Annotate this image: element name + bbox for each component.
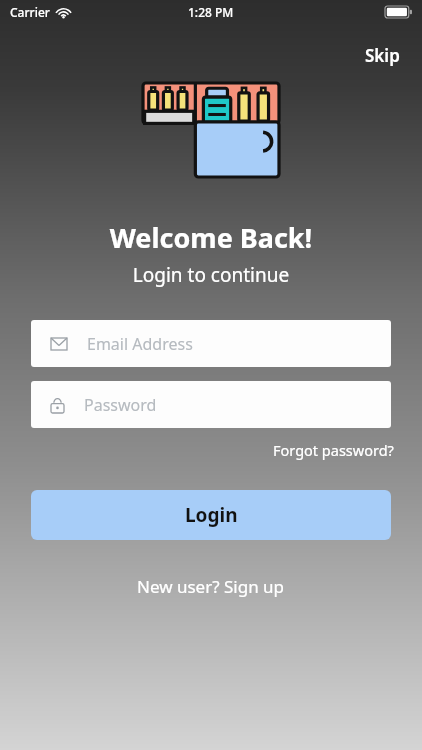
button[interactable]: Login bbox=[31, 490, 391, 540]
button[interactable]: New user? Sign up bbox=[127, 570, 295, 603]
staticText: Carrier bbox=[10, 4, 50, 20]
staticText: Welcome Back! bbox=[0, 219, 422, 256]
button[interactable]: Email bbox=[31, 320, 391, 367]
staticText: Skip bbox=[365, 44, 400, 67]
staticText: Email Address bbox=[87, 333, 193, 355]
staticText: Password bbox=[84, 394, 157, 416]
button[interactable]: Password bbox=[31, 381, 391, 428]
staticText: Forgot password? bbox=[273, 440, 394, 460]
staticText: 1:28 PM bbox=[188, 4, 234, 20]
button[interactable]: Forgot password? bbox=[267, 436, 400, 464]
other: App logo bbox=[143, 83, 279, 177]
button[interactable]: Skip bbox=[357, 40, 408, 71]
staticText: Login bbox=[185, 502, 238, 528]
staticText: New user? Sign up bbox=[137, 575, 285, 598]
staticText: Login to continue bbox=[0, 262, 422, 288]
